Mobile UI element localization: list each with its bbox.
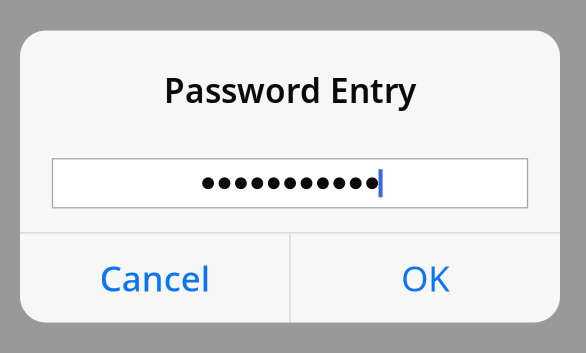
staticText: Cancel [100, 255, 210, 301]
staticText: Password Entry [164, 68, 416, 112]
button[interactable]: OK [291, 233, 560, 322]
button[interactable]: Password [52, 159, 527, 208]
button[interactable]: Cancel [20, 233, 289, 322]
staticText: OK [401, 255, 449, 301]
